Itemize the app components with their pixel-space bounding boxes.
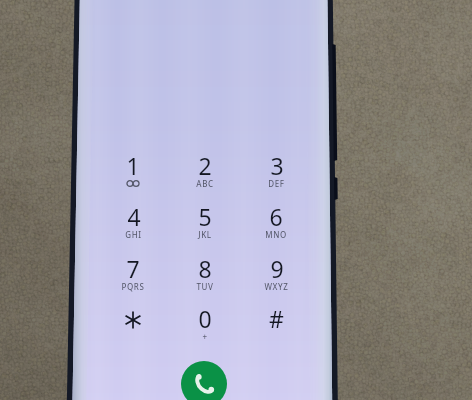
button[interactable]: Call bbox=[181, 361, 227, 400]
staticText: MNO bbox=[265, 229, 287, 240]
staticText: DEF bbox=[268, 178, 285, 189]
staticText: TUV bbox=[196, 281, 214, 292]
staticText: 5 bbox=[198, 201, 212, 232]
button[interactable]: 7 bbox=[105, 253, 161, 299]
staticText: 1 bbox=[126, 150, 140, 181]
button[interactable]: 2 bbox=[177, 150, 233, 196]
button[interactable]: # bbox=[248, 303, 304, 349]
staticText: WXYZ bbox=[264, 281, 289, 292]
staticText: # bbox=[269, 303, 284, 334]
staticText: 6 bbox=[269, 201, 283, 232]
staticText: 4 bbox=[127, 201, 141, 232]
staticText: 2 bbox=[198, 150, 212, 181]
button[interactable]: 8 bbox=[177, 253, 233, 299]
staticText: ABC bbox=[196, 178, 214, 189]
staticText: 7 bbox=[126, 253, 140, 284]
staticText: 8 bbox=[198, 253, 212, 284]
staticText: 3 bbox=[270, 150, 284, 181]
staticText: GHI bbox=[125, 229, 142, 240]
staticText: 9 bbox=[270, 253, 284, 284]
button[interactable]: 3 bbox=[248, 150, 304, 196]
button[interactable]: 5 bbox=[177, 201, 233, 247]
button[interactable]: 4 bbox=[105, 201, 161, 247]
button[interactable]: 0 bbox=[177, 303, 233, 349]
staticText: + bbox=[202, 331, 208, 342]
staticText: 0 bbox=[198, 303, 212, 334]
staticText: PQRS bbox=[121, 281, 145, 292]
staticText: JKL bbox=[198, 229, 212, 240]
button[interactable]: 6 bbox=[248, 201, 304, 247]
button[interactable]: 9 bbox=[248, 253, 304, 299]
button[interactable]: 1 bbox=[105, 150, 161, 196]
button[interactable] bbox=[105, 303, 161, 349]
